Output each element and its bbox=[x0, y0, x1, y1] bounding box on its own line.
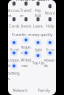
button[interactable]: Invest bbox=[20, 17, 32, 29]
button[interactable]: Account bbox=[8, 4, 20, 16]
button[interactable]: Deposit bbox=[8, 52, 20, 65]
staticText: Top Up bbox=[32, 60, 44, 65]
button[interactable]: Request bbox=[20, 39, 32, 52]
button[interactable]: Settings bbox=[8, 65, 20, 78]
staticText: Cards bbox=[8, 23, 19, 28]
button[interactable]: Pay Bill bbox=[32, 4, 44, 16]
staticText: Transfer bbox=[20, 8, 32, 18]
button[interactable]: Send bbox=[8, 39, 20, 52]
button[interactable]: Family bbox=[32, 86, 56, 94]
staticText: Deposit bbox=[8, 57, 20, 68]
button[interactable]: Withdraw bbox=[20, 52, 32, 65]
staticText: Family bbox=[38, 87, 50, 93]
button[interactable]: Help bbox=[44, 17, 56, 29]
staticText: More bbox=[45, 10, 55, 15]
button[interactable]: Transfer bbox=[20, 4, 32, 16]
staticText: Request bbox=[20, 44, 31, 55]
staticText: Settings bbox=[8, 70, 20, 81]
staticText: Pay Bill bbox=[35, 8, 41, 18]
staticText: Invest bbox=[21, 23, 31, 28]
button[interactable]: Scan bbox=[44, 39, 56, 52]
staticText: Account bbox=[8, 8, 20, 18]
button[interactable]: Rewards bbox=[44, 52, 56, 65]
staticText: Withdraw bbox=[20, 57, 31, 68]
staticText: Rewards bbox=[44, 57, 56, 68]
staticText: Transfer Cash bbox=[15, 0, 49, 2]
button[interactable]: Loans bbox=[32, 17, 44, 29]
button[interactable]: More bbox=[44, 4, 56, 16]
staticText: Network bbox=[12, 87, 27, 93]
staticText: Transfer money quickly bbox=[11, 32, 52, 37]
button[interactable]: Cards bbox=[8, 17, 20, 29]
button[interactable]: Top Up bbox=[32, 52, 44, 65]
button[interactable]: Split bbox=[32, 39, 44, 52]
staticText: Loans bbox=[33, 23, 43, 28]
staticText: Help bbox=[46, 23, 54, 28]
staticText: Scan bbox=[46, 47, 54, 52]
staticText: Split bbox=[34, 47, 41, 52]
staticText: Send bbox=[10, 47, 18, 52]
button[interactable]: Network bbox=[8, 86, 32, 94]
